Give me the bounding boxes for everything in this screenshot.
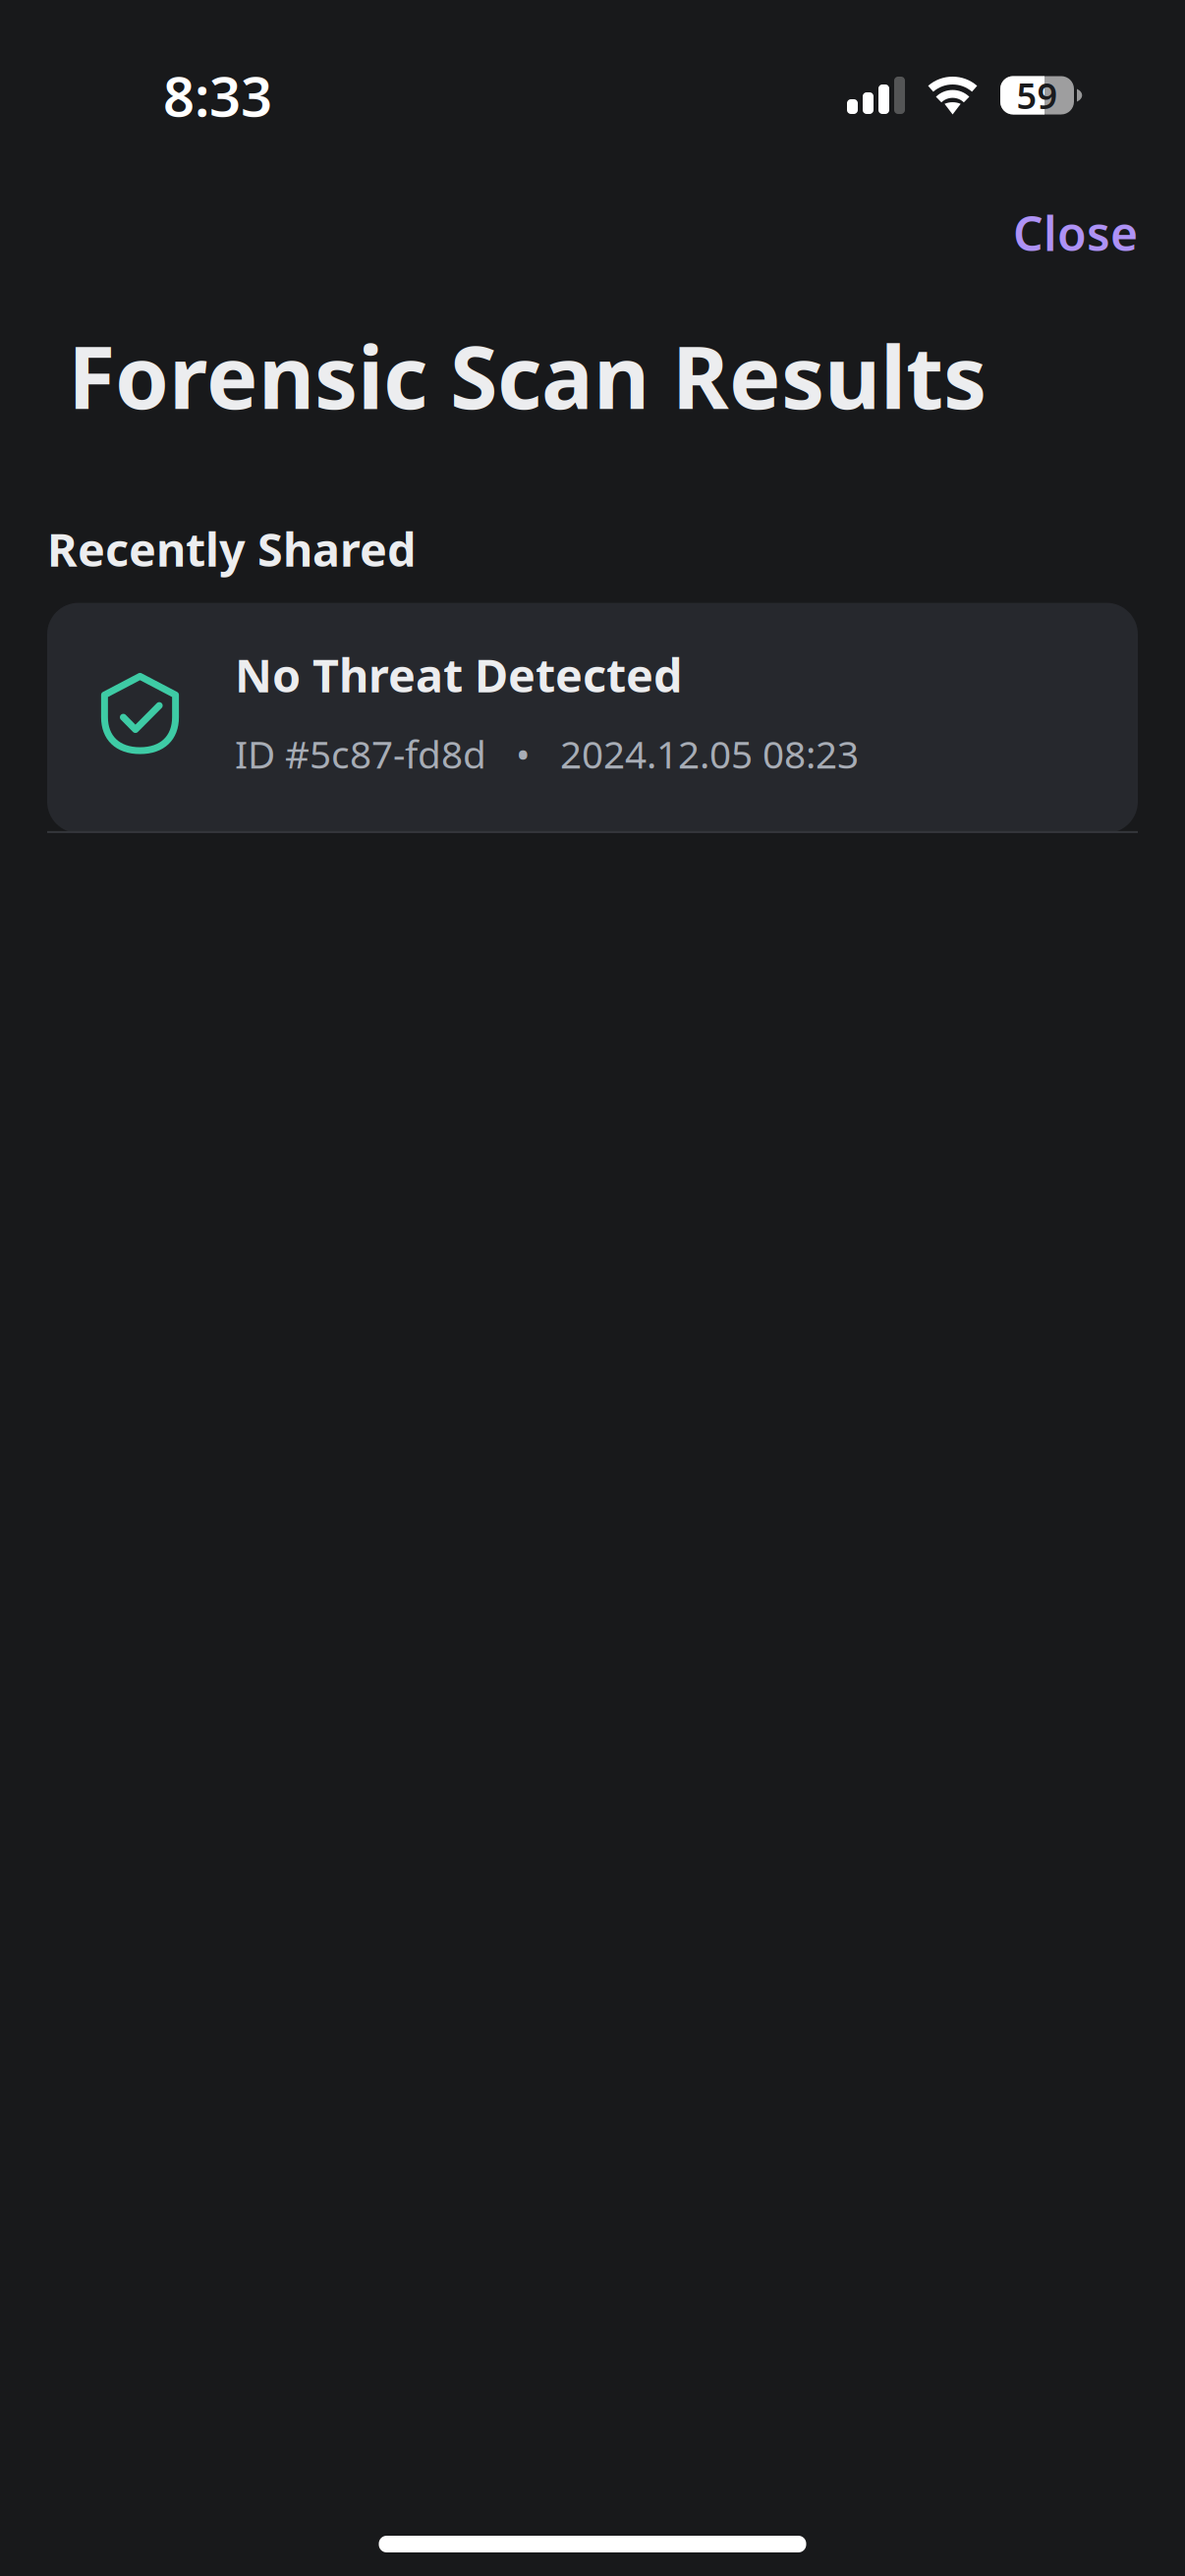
staticText: Forensic Scan Results (68, 318, 987, 433)
button[interactable]: No Threat Detected (47, 603, 1138, 833)
staticText: No Threat Detected (235, 644, 682, 705)
staticText: 59 (1016, 72, 1058, 119)
staticText: Recently Shared (47, 518, 416, 579)
staticText: 8:33 (163, 59, 272, 132)
staticText: ID #5c87-fd8d • 2024.12.05 08:23 (235, 728, 859, 779)
staticText: Close (1013, 201, 1138, 264)
button[interactable]: Close (991, 188, 1159, 278)
